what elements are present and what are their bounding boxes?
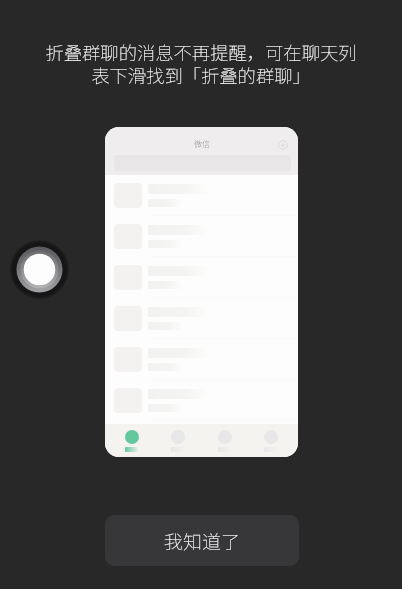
button[interactable] [105, 339, 298, 380]
button[interactable]: Assistive touch [11, 241, 68, 298]
staticText: 折叠群聊的消息不再提醒，可在聊天列 表下滑找到「折叠的群聊」 [45, 39, 357, 88]
button[interactable]: 我知道了 [105, 515, 299, 566]
staticText: 微信 [194, 138, 210, 150]
button[interactable]: Chats [112, 424, 152, 457]
staticText: 我知道了 [164, 527, 241, 555]
button[interactable] [105, 216, 298, 257]
button[interactable] [105, 298, 298, 339]
button[interactable] [105, 175, 298, 216]
button[interactable] [105, 257, 298, 298]
button[interactable]: Tab [205, 424, 245, 457]
button[interactable]: Tab [251, 424, 291, 457]
button[interactable] [105, 380, 298, 421]
button[interactable]: Add [276, 138, 290, 152]
button[interactable]: Tab [158, 424, 198, 457]
